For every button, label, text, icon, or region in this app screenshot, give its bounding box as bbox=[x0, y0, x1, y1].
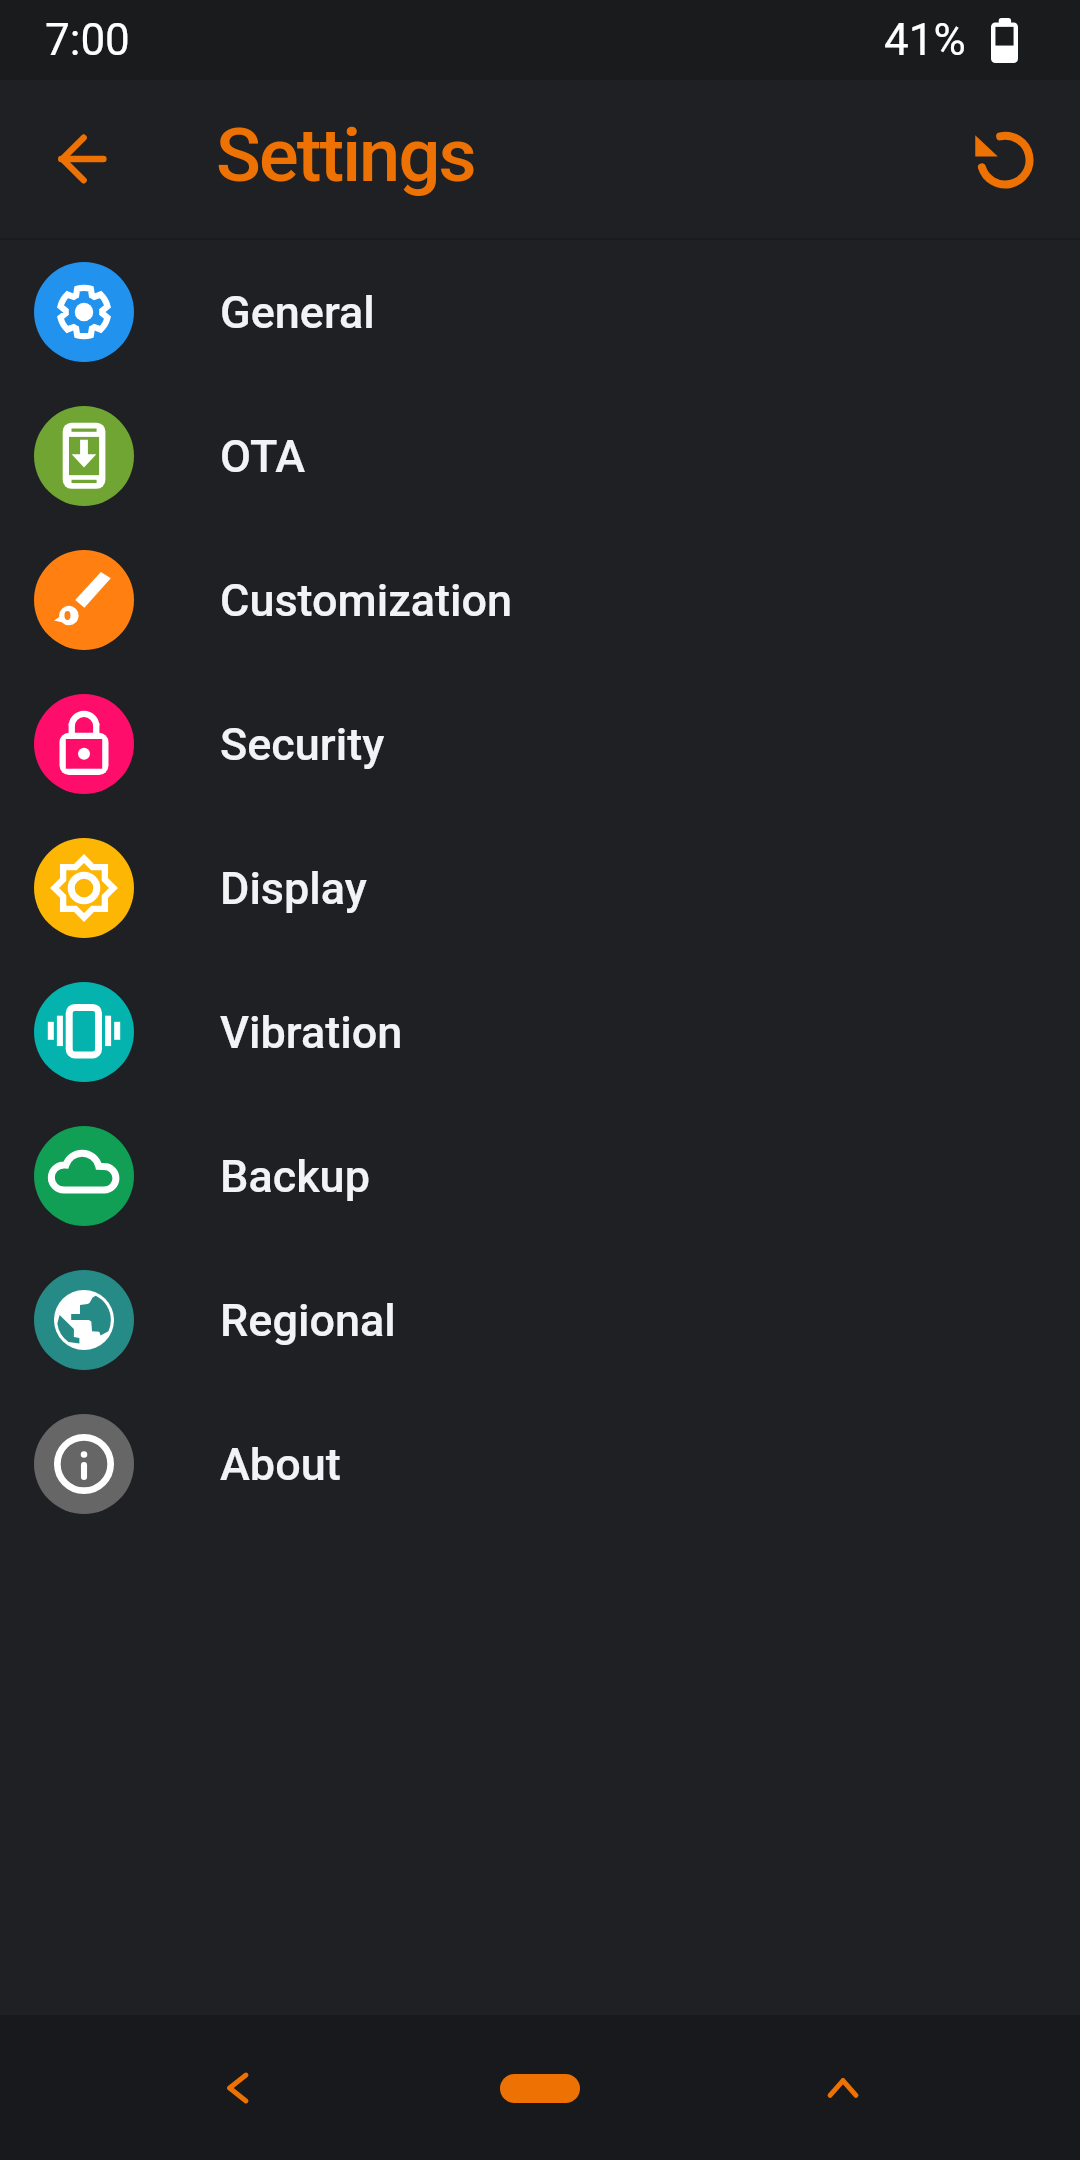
button[interactable]: About bbox=[0, 1392, 1080, 1536]
button[interactable]: Back bbox=[28, 105, 136, 213]
button[interactable]: Security bbox=[0, 672, 1080, 816]
staticText: Settings bbox=[216, 112, 475, 199]
staticText: Security bbox=[220, 718, 385, 771]
button[interactable]: Backup bbox=[0, 1104, 1080, 1248]
button[interactable]: Recents bbox=[783, 2028, 903, 2148]
button[interactable]: Customization bbox=[0, 528, 1080, 672]
staticText: Regional bbox=[220, 1294, 396, 1347]
staticText: About bbox=[220, 1438, 341, 1491]
button[interactable]: General bbox=[0, 240, 1080, 384]
staticText: General bbox=[220, 286, 375, 339]
button[interactable]: Regional bbox=[0, 1248, 1080, 1392]
staticText: 7:00 bbox=[45, 14, 130, 66]
button[interactable]: Reset bbox=[948, 105, 1056, 213]
staticText: Backup bbox=[220, 1150, 370, 1203]
button[interactable]: Back bbox=[177, 2028, 297, 2148]
button[interactable]: Display bbox=[0, 816, 1080, 960]
staticText: Customization bbox=[220, 574, 513, 627]
staticText: 41% bbox=[884, 14, 966, 66]
staticText: OTA bbox=[220, 430, 306, 483]
staticText: Display bbox=[220, 862, 367, 915]
button[interactable]: Home bbox=[470, 2048, 610, 2128]
button[interactable]: OTA bbox=[0, 384, 1080, 528]
staticText: Vibration bbox=[220, 1006, 403, 1059]
button[interactable]: Vibration bbox=[0, 960, 1080, 1104]
